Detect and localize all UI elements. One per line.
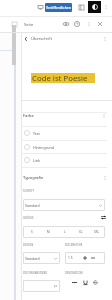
button[interactable]: Layout [77,3,85,11]
button[interactable]: Veröffentlichen [45,3,72,12]
button[interactable]: View [62,20,70,28]
staticText: Standard [25,203,40,208]
staticText: 1.5 [68,256,73,260]
button[interactable]: Underline [81,278,89,286]
button[interactable]: M [40,226,57,238]
button[interactable]: Standard [23,252,60,264]
button[interactable]: Link [21,153,107,167]
button[interactable]: Color options [100,112,107,119]
staticText: GRÖSSE [23,216,34,220]
staticText: Überschrift [31,36,53,41]
staticText: Veröffentlichen [46,5,71,10]
button[interactable]: S [23,226,40,238]
button[interactable]: Preview device [36,3,44,11]
button[interactable]: Standard [23,199,105,211]
staticText: XL [79,230,83,234]
staticText: Code ist Poesie [32,73,88,83]
staticText: DEKORATION [65,271,83,275]
button[interactable]: Block options [101,35,108,42]
staticText: SCHRIFT [23,189,35,193]
staticText: Text [33,131,40,136]
button[interactable]: Settings [88,1,101,13]
staticText: S [31,230,33,234]
button[interactable]: Close [96,20,104,28]
button[interactable]: L [57,226,73,238]
button[interactable]: No decoration [70,278,78,286]
staticText: L [64,230,66,234]
button[interactable]: Back [22,35,29,42]
button[interactable]: Strikethrough [91,278,99,286]
button[interactable]: History [73,20,81,28]
button[interactable]: XL [73,226,89,238]
button[interactable]: Decrease [89,254,97,262]
button[interactable]: px [23,280,60,292]
button[interactable]: More options [102,3,110,11]
button[interactable]: Text [21,126,107,140]
staticText: XXL [94,230,100,234]
button[interactable]: Options [85,20,93,28]
staticText: DESIGN [23,243,34,247]
button[interactable]: Typography options [101,174,108,181]
staticText: px [54,284,58,288]
button[interactable]: Hintergrund [21,140,107,154]
button[interactable]: Increase [81,254,89,262]
staticText: Hintergrund [33,145,54,150]
button[interactable]: Size settings [100,214,106,220]
staticText: Link [33,158,40,163]
staticText: Seite [24,22,34,27]
button[interactable]: Document overview [10,20,18,28]
staticText: Standard [25,256,40,261]
staticText: Typografie [23,175,44,180]
staticText: Farbe [23,113,34,118]
staticText: ZEILENHÖHE [65,243,83,247]
staticText: ZEICHENABSTAND [23,271,48,275]
button[interactable]: XXL [89,226,105,238]
staticText: M [47,230,50,234]
